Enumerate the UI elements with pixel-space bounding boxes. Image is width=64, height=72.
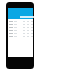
button[interactable] bbox=[8, 26, 33, 29]
button[interactable] bbox=[8, 8, 33, 19]
button[interactable] bbox=[8, 29, 33, 32]
button[interactable] bbox=[8, 32, 33, 35]
button[interactable] bbox=[8, 35, 33, 38]
button[interactable] bbox=[8, 23, 33, 26]
button[interactable] bbox=[8, 20, 33, 23]
